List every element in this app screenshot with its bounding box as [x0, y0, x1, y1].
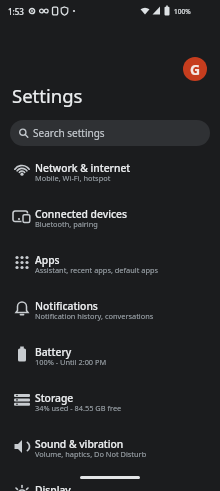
button[interactable]: Search settings: [10, 120, 210, 146]
staticText: 100% - Until 2:00 PM: [35, 357, 107, 367]
staticText: Volume, haptics, Do Not Disturb: [35, 449, 147, 459]
staticText: Mobile, Wi-Fi, hotspot: [35, 173, 111, 183]
staticText: Storage: [35, 391, 74, 405]
button[interactable]: Storage: [0, 377, 220, 423]
staticText: Display: [35, 483, 71, 491]
staticText: Search settings: [33, 126, 105, 140]
staticText: Bluetooth, pairing: [35, 219, 98, 229]
staticText: 1:53: [8, 6, 24, 17]
button[interactable]: Apps: [0, 239, 220, 285]
staticText: Sound & vibration: [35, 437, 124, 451]
staticText: 34% used - 84.55 GB free: [35, 403, 122, 413]
staticText: G: [190, 60, 201, 79]
staticText: Settings: [12, 83, 83, 108]
button[interactable]: Display: [0, 469, 220, 491]
button[interactable]: Sound & vibration: [0, 423, 220, 469]
staticText: Network & internet: [35, 161, 131, 175]
staticText: Apps: [35, 253, 60, 267]
button[interactable]: Battery: [0, 331, 220, 377]
staticText: 100%: [174, 7, 191, 16]
button[interactable]: G: [183, 57, 207, 81]
staticText: Assistant, recent apps, default apps: [35, 265, 159, 275]
staticText: Notifications: [35, 299, 98, 313]
staticText: Notification history, conversations: [35, 311, 154, 321]
button[interactable]: Network & internet: [0, 147, 220, 193]
staticText: Battery: [35, 345, 72, 359]
button[interactable]: Notifications: [0, 285, 220, 331]
button[interactable]: Connected devices: [0, 193, 220, 239]
staticText: Connected devices: [35, 207, 127, 221]
